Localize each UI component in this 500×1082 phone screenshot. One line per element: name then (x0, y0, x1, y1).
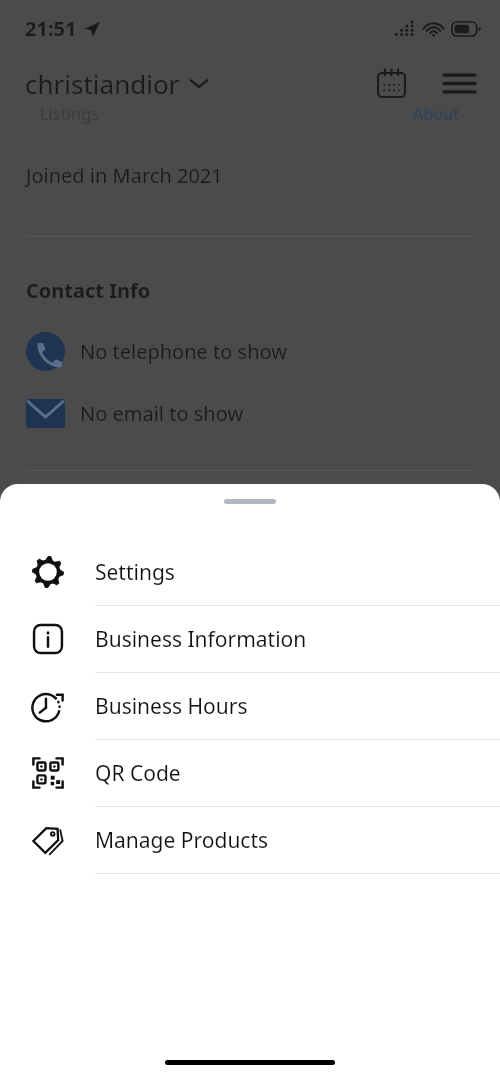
staticText: No telephone to show (80, 338, 287, 365)
button[interactable]: Business Information (0, 606, 500, 673)
staticText: Business Information (95, 625, 307, 654)
staticText: Business Hours (95, 692, 248, 721)
staticText: About (413, 103, 460, 125)
staticText: Manage Products (95, 826, 269, 855)
button[interactable]: Business Hours (0, 673, 500, 740)
button[interactable]: Manage Products (0, 807, 500, 874)
button[interactable]: Menu (436, 60, 482, 106)
staticText: QR Code (95, 759, 181, 788)
staticText: Joined in March 2021 (26, 162, 223, 189)
staticText: Listings (40, 103, 99, 125)
staticText: Settings (95, 558, 175, 587)
staticText: christiandior (25, 66, 180, 101)
button[interactable]: Calendar (368, 60, 414, 106)
staticText: Contact Info (26, 277, 151, 304)
staticText: No email to show (80, 400, 244, 427)
button[interactable]: christiandior (25, 66, 208, 101)
button[interactable]: Settings (0, 539, 500, 606)
staticText: 21:51 (25, 15, 77, 42)
button[interactable]: QR Code (0, 740, 500, 807)
